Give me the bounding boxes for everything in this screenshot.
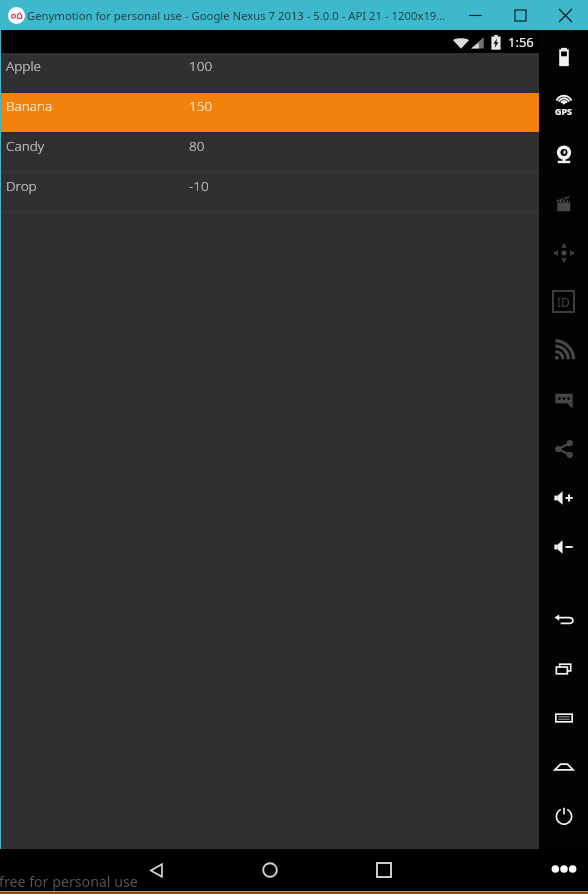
button[interactable]: Identifiers xyxy=(539,277,588,326)
button[interactable]: Screen recorder xyxy=(539,179,588,228)
button[interactable]: Rotate xyxy=(539,228,588,277)
button[interactable]: Home xyxy=(539,742,588,791)
staticText: Apple xyxy=(6,57,41,75)
button[interactable]: Home xyxy=(242,849,298,891)
staticText: Drop xyxy=(6,177,37,195)
button[interactable]: Messages xyxy=(539,375,588,424)
button[interactable]: Minimize xyxy=(453,0,498,30)
button[interactable]: Back xyxy=(128,849,184,891)
button[interactable]: Share xyxy=(539,424,588,473)
button[interactable]: Drop xyxy=(1,173,539,213)
button[interactable]: Camera xyxy=(539,130,588,179)
staticText: Banana xyxy=(6,97,53,115)
button[interactable]: Back xyxy=(539,595,588,644)
staticText: 1:56 xyxy=(508,33,534,51)
button[interactable]: Menu xyxy=(539,693,588,742)
staticText: Candy xyxy=(6,137,45,155)
staticText: ID xyxy=(557,294,570,310)
button[interactable]: Close xyxy=(543,0,588,30)
staticText: GPS xyxy=(555,105,573,117)
button[interactable]: Volume up xyxy=(539,473,588,522)
button[interactable]: Apple xyxy=(1,53,539,93)
button[interactable]: Network xyxy=(539,326,588,375)
staticText: 100 xyxy=(189,57,213,75)
button[interactable]: Maximize xyxy=(498,0,543,30)
staticText: free for personal use xyxy=(0,872,138,891)
staticText: -10 xyxy=(189,177,209,195)
staticText: 80 xyxy=(189,137,205,155)
button[interactable]: Battery xyxy=(539,32,588,81)
button[interactable]: Volume down xyxy=(539,522,588,571)
button[interactable]: Power xyxy=(539,791,588,840)
button[interactable]: Recent apps xyxy=(539,644,588,693)
button[interactable]: GPS xyxy=(539,81,588,130)
staticText: Genymotion for personal use - Google Nex… xyxy=(27,8,446,23)
button[interactable]: Recents xyxy=(356,849,412,891)
staticText: 150 xyxy=(189,97,213,115)
button[interactable]: Candy xyxy=(1,133,539,173)
button[interactable]: Banana xyxy=(1,93,539,133)
button[interactable]: More options xyxy=(539,849,588,891)
